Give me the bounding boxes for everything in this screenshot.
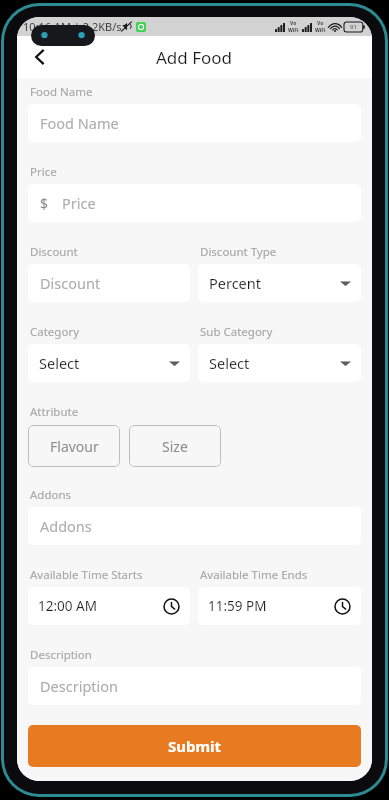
- staticText: Description: [30, 647, 92, 663]
- other: Pick time: [162, 597, 181, 616]
- staticText: Size: [162, 437, 188, 456]
- button[interactable]: Addons: [28, 507, 361, 545]
- staticText: Attribute: [30, 404, 79, 420]
- staticText: Submit: [168, 736, 222, 756]
- staticText: Discount: [40, 273, 101, 293]
- button[interactable]: Flavour: [28, 425, 120, 467]
- staticText: $: [40, 194, 49, 213]
- other: Pick time: [333, 597, 352, 616]
- staticText: Vo: [290, 20, 297, 27]
- staticText: Food Name: [40, 113, 119, 133]
- button[interactable]: Submit: [28, 725, 361, 767]
- staticText: Price: [62, 193, 96, 213]
- staticText: 10:16 AM | 2.2KB/s: [23, 19, 122, 34]
- button[interactable]: Size: [129, 425, 221, 467]
- staticText: Vo: [317, 20, 324, 27]
- staticText: Add Food: [156, 46, 233, 69]
- staticText: 11:59 PM: [208, 597, 267, 615]
- staticText: Discount: [30, 244, 78, 260]
- staticText: WiFi: [315, 27, 326, 34]
- button[interactable]: $: [28, 184, 361, 222]
- staticText: Select: [209, 353, 250, 373]
- staticText: Food Name: [30, 84, 93, 100]
- staticText: Price: [30, 164, 57, 180]
- staticText: Select: [39, 353, 80, 373]
- button[interactable]: Food Name: [28, 104, 361, 142]
- button[interactable]: 11:59 PM: [198, 587, 361, 625]
- staticText: Category: [30, 324, 80, 340]
- button[interactable]: Select: [198, 344, 361, 382]
- staticText: Available Time Ends: [200, 567, 308, 583]
- button[interactable]: Back: [23, 40, 57, 74]
- button[interactable]: Percent: [198, 264, 361, 302]
- staticText: Food Image: [30, 725, 95, 741]
- staticText: Description: [40, 676, 119, 696]
- button[interactable]: Description: [28, 667, 361, 705]
- staticText: Addons: [30, 487, 72, 503]
- staticText: Percent: [209, 273, 261, 293]
- staticText: Available Time Starts: [30, 567, 143, 583]
- staticText: Flavour: [50, 437, 99, 456]
- staticText: WiFi: [288, 27, 299, 34]
- staticText: Discount Type: [200, 244, 277, 260]
- staticText: 12:00 AM: [38, 597, 97, 615]
- staticText: 91: [350, 23, 357, 31]
- button[interactable]: 12:00 AM: [28, 587, 190, 625]
- button[interactable]: Select: [28, 344, 190, 382]
- staticText: Addons: [40, 516, 92, 536]
- staticText: Sub Category: [200, 324, 273, 340]
- button[interactable]: Discount: [28, 264, 190, 302]
